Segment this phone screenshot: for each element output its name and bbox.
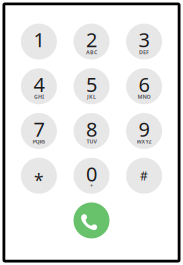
staticText: WXYZ xyxy=(137,138,152,145)
button[interactable]: 1 xyxy=(21,24,57,60)
button[interactable]: 4 xyxy=(21,68,57,104)
staticText: ABC xyxy=(86,48,97,56)
staticText: 7 xyxy=(33,116,44,142)
staticText: 4 xyxy=(33,71,44,98)
staticText: 6 xyxy=(139,71,150,98)
button[interactable]: 3 xyxy=(126,24,162,60)
staticText: MNO xyxy=(138,93,151,100)
staticText: TUV xyxy=(86,138,96,145)
button[interactable]: 8 xyxy=(73,113,109,149)
button[interactable]: * xyxy=(21,158,57,194)
staticText: 2 xyxy=(86,26,97,53)
button[interactable]: 9 xyxy=(126,113,162,149)
button[interactable]: # xyxy=(126,158,162,194)
staticText: * xyxy=(34,169,44,192)
staticText: PQRS xyxy=(32,138,45,145)
staticText: 5 xyxy=(86,71,97,98)
staticText: 0 xyxy=(86,160,97,187)
button[interactable]: 0 xyxy=(73,158,109,194)
button[interactable]: Call xyxy=(73,202,109,238)
staticText: 8 xyxy=(86,116,97,142)
staticText: + xyxy=(90,182,93,189)
button[interactable]: 2 xyxy=(73,24,109,60)
button[interactable]: 6 xyxy=(126,68,162,104)
staticText: 9 xyxy=(139,116,150,142)
staticText: # xyxy=(140,168,148,184)
staticText: 1 xyxy=(33,26,44,53)
staticText: DEF xyxy=(139,48,149,56)
staticText: JKL xyxy=(87,93,96,100)
staticText: GHI xyxy=(34,93,44,100)
button[interactable]: 7 xyxy=(21,113,57,149)
staticText: 3 xyxy=(139,26,150,53)
button[interactable]: 5 xyxy=(73,68,109,104)
